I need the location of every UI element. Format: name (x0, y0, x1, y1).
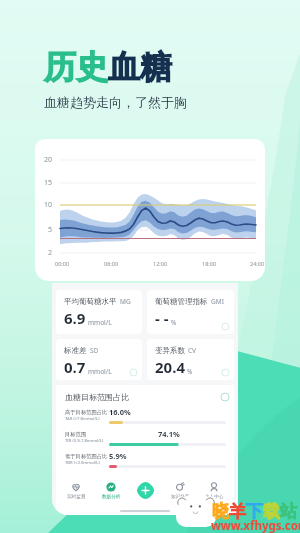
staticText: 站 (280, 501, 297, 522)
staticText: TAR (>7.8mmol/L) (65, 416, 100, 422)
staticText: % (187, 367, 193, 376)
staticText: 葡萄糖管理指标 (155, 297, 208, 306)
staticText: 2 (48, 248, 53, 258)
staticText: 12:00 (153, 260, 168, 267)
button[interactable]: 数据分析 (97, 482, 125, 500)
button[interactable]: 变异系数 (147, 339, 234, 380)
button[interactable]: 帮助 (222, 369, 229, 376)
staticText: 个人中心 (205, 494, 224, 500)
staticText: GMI (211, 297, 224, 306)
staticText: mmol/L (88, 367, 112, 376)
staticText: SD (90, 346, 99, 355)
button[interactable]: 知识科普 (166, 482, 194, 500)
staticText: 变异系数 (155, 346, 185, 355)
staticText: 15 (44, 178, 53, 188)
staticText: 实时监测 (67, 494, 86, 500)
staticText: mmol/L (88, 318, 112, 327)
staticText: 24:00 (250, 260, 265, 267)
staticText: 血糖目标范围占比 (65, 392, 129, 402)
staticText: 目标范围 (65, 431, 87, 438)
staticText: 16.0% (109, 407, 131, 417)
button[interactable]: 平均葡萄糖水平 (56, 290, 142, 334)
staticText: 5 (48, 225, 53, 235)
staticText: www.xfhygs.com (211, 518, 300, 533)
staticText: CV (188, 346, 197, 355)
staticText: - - (155, 308, 169, 328)
staticText: TIR (3.9-7.8mmol/L) (65, 438, 104, 444)
staticText: 低于目标范围占比 (65, 453, 108, 460)
staticText: MG (120, 297, 131, 306)
button[interactable]: 帮助 (222, 323, 229, 330)
staticText: 羊 (229, 501, 246, 522)
staticText: 20 (44, 155, 53, 165)
staticText: 18:00 (202, 260, 217, 267)
button[interactable]: 帮助 (221, 393, 229, 401)
staticText: 5.9% (109, 451, 127, 461)
staticText: TBR (<3.9mmol/L) (65, 460, 100, 466)
staticText: 血糖趋势走向，了然于胸 (44, 94, 187, 110)
button[interactable]: 个人中心 (200, 482, 228, 500)
staticText: 高于目标范围占比 (65, 409, 108, 416)
staticText: 标准差 (64, 346, 87, 355)
staticText: 晓 (212, 501, 229, 522)
staticText: 06:00 (104, 260, 119, 267)
staticText: 数据分析 (102, 494, 121, 500)
button[interactable]: 标准差 (56, 339, 142, 380)
staticText: 平均葡萄糖水平 (64, 297, 117, 306)
staticText: 10 (44, 200, 53, 210)
staticText: 74.1% (158, 429, 180, 439)
staticText: 00:00 (55, 260, 70, 267)
staticText: % (171, 318, 177, 327)
button[interactable]: 添加记录 (131, 482, 159, 504)
button[interactable]: 实时监测 (62, 482, 90, 500)
staticText: 下 (246, 501, 263, 522)
button[interactable]: 帮助 (130, 369, 137, 376)
staticText: 载 (263, 501, 280, 522)
staticText: 20.4 (155, 357, 185, 377)
staticText: 6.9 (64, 308, 86, 328)
staticText: 知识科普 (171, 494, 190, 500)
staticText: 历史血糖 (44, 47, 172, 87)
button[interactable]: 葡萄糖管理指标 (147, 290, 234, 334)
staticText: 0.7 (64, 357, 86, 377)
